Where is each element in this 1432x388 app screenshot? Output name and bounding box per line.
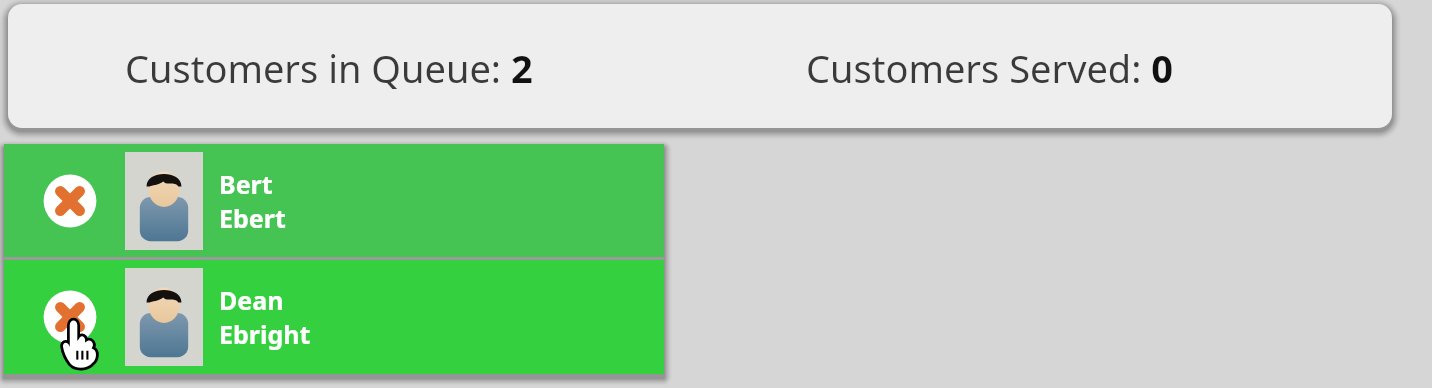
button[interactable]: Remove Dean Ebright <box>4 260 664 374</box>
staticText: Ebright <box>219 317 311 351</box>
button[interactable]: Remove Bert Ebert <box>4 144 664 257</box>
staticText: Customers Served: 0 <box>806 42 1174 94</box>
staticText: Dean <box>219 283 284 317</box>
button[interactable]: Remove Dean Ebright <box>41 288 99 346</box>
button[interactable]: Remove Bert Ebert <box>41 172 99 230</box>
staticText: Bert <box>219 167 273 201</box>
staticText: Ebert <box>219 201 286 235</box>
staticText: Customers in Queue: 2 <box>125 42 533 94</box>
